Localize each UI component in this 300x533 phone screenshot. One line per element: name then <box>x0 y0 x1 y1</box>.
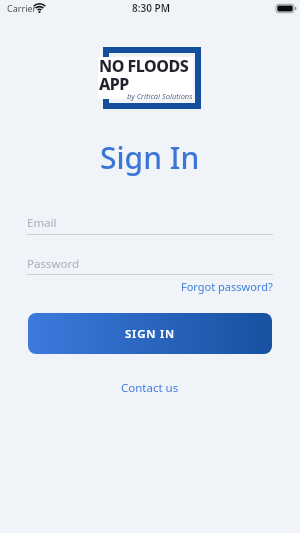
staticText: NO FLOODS APP <box>99 55 189 94</box>
staticText: Carrier <box>7 2 37 14</box>
staticText: Email <box>27 215 57 231</box>
staticText: Sign In <box>100 137 200 178</box>
button[interactable]: Forgot password? <box>181 279 273 294</box>
staticText: SIGN IN <box>125 326 176 342</box>
button[interactable]: SIGN IN <box>28 313 272 354</box>
staticText: 8:30 PM <box>132 1 170 15</box>
staticText: by Critical Solutions <box>127 91 193 101</box>
staticText: Password <box>27 256 80 272</box>
button[interactable]: Contact us <box>121 380 179 396</box>
